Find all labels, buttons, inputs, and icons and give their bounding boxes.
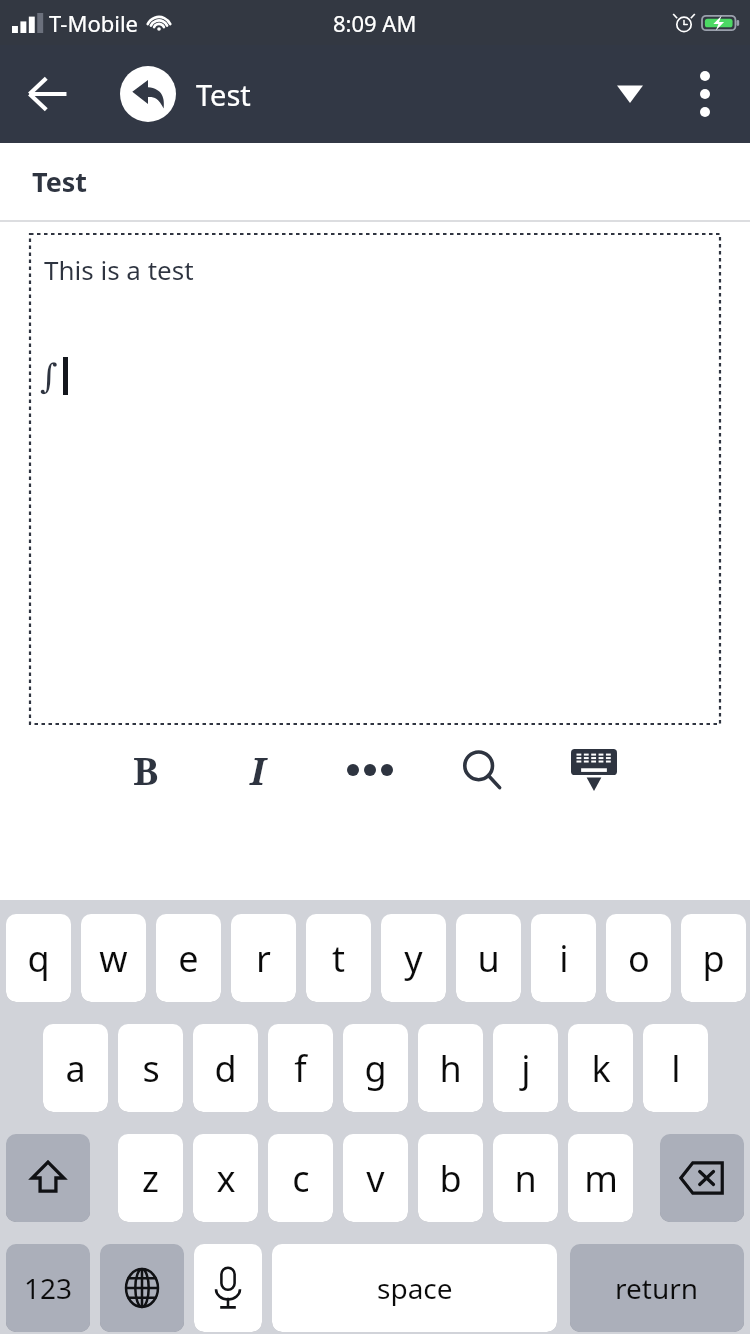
- staticText: a: [65, 1044, 86, 1093]
- staticText: g: [364, 1044, 387, 1093]
- staticText: k: [591, 1044, 611, 1093]
- staticText: w: [99, 934, 128, 983]
- button[interactable]: Italic: [222, 734, 294, 806]
- staticText: l: [671, 1044, 681, 1093]
- button[interactable]: Back: [14, 60, 82, 128]
- button[interactable]: f: [268, 1024, 333, 1112]
- button[interactable]: b: [418, 1134, 483, 1222]
- button[interactable]: p: [681, 914, 746, 1002]
- staticText: 123: [24, 1269, 73, 1307]
- button[interactable]: l: [643, 1024, 708, 1112]
- button[interactable]: z: [118, 1134, 183, 1222]
- button[interactable]: o: [606, 914, 671, 1002]
- button[interactable]: Search: [446, 734, 518, 806]
- button[interactable]: w: [81, 914, 146, 1002]
- button[interactable]: r: [231, 914, 296, 1002]
- staticText: j: [521, 1044, 531, 1093]
- staticText: Test: [196, 75, 251, 114]
- staticText: o: [628, 934, 650, 983]
- staticText: B: [133, 744, 159, 796]
- staticText: ∫: [40, 356, 58, 396]
- button[interactable]: Shift: [6, 1134, 90, 1222]
- button[interactable]: a: [43, 1024, 108, 1112]
- staticText: u: [477, 934, 500, 983]
- button[interactable]: More options: [674, 63, 736, 125]
- button[interactable]: This is a test: [30, 234, 720, 724]
- staticText: h: [439, 1044, 462, 1093]
- staticText: y: [404, 934, 423, 983]
- button[interactable]: s: [118, 1024, 183, 1112]
- staticText: 8:09 AM: [333, 8, 417, 38]
- button[interactable]: k: [568, 1024, 633, 1112]
- button[interactable]: Numbers: [6, 1244, 90, 1332]
- staticText: return: [615, 1269, 699, 1307]
- button[interactable]: u: [456, 914, 521, 1002]
- staticText: i: [559, 934, 569, 983]
- button[interactable]: Dropdown: [602, 66, 658, 122]
- staticText: r: [256, 934, 271, 983]
- button[interactable]: h: [418, 1024, 483, 1112]
- staticText: m: [584, 1154, 618, 1203]
- button[interactable]: t: [306, 914, 371, 1002]
- staticText: q: [27, 934, 50, 983]
- button[interactable]: m: [568, 1134, 633, 1222]
- button[interactable]: More formatting: [334, 734, 406, 806]
- button[interactable]: x: [193, 1134, 258, 1222]
- button[interactable]: c: [268, 1134, 333, 1222]
- button[interactable]: d: [193, 1024, 258, 1112]
- button[interactable]: Switch language: [100, 1244, 184, 1332]
- button[interactable]: n: [493, 1134, 558, 1222]
- button[interactable]: Reply: [118, 64, 178, 124]
- button[interactable]: Backspace: [660, 1134, 744, 1222]
- staticText: T-Mobile: [49, 8, 138, 38]
- staticText: p: [702, 934, 725, 983]
- staticText: x: [216, 1154, 236, 1203]
- button[interactable]: i: [531, 914, 596, 1002]
- staticText: This is a test: [44, 252, 194, 287]
- button[interactable]: Hide keyboard: [558, 734, 630, 806]
- staticText: v: [366, 1154, 385, 1203]
- button[interactable]: space: [272, 1244, 557, 1332]
- button[interactable]: e: [156, 914, 221, 1002]
- staticText: s: [142, 1044, 160, 1093]
- button[interactable]: v: [343, 1134, 408, 1222]
- staticText: I: [250, 744, 266, 796]
- staticText: space: [377, 1269, 453, 1307]
- button[interactable]: Bold: [110, 734, 182, 806]
- button[interactable]: Voice input: [194, 1244, 262, 1332]
- staticText: t: [332, 934, 345, 983]
- staticText: z: [142, 1154, 159, 1203]
- staticText: e: [178, 934, 199, 983]
- staticText: c: [292, 1154, 310, 1203]
- button[interactable]: g: [343, 1024, 408, 1112]
- staticText: n: [514, 1154, 537, 1203]
- staticText: Test: [32, 163, 88, 200]
- button[interactable]: y: [381, 914, 446, 1002]
- staticText: b: [439, 1154, 462, 1203]
- button[interactable]: j: [493, 1024, 558, 1112]
- button[interactable]: Return: [570, 1244, 744, 1332]
- staticText: f: [294, 1044, 307, 1093]
- staticText: d: [214, 1044, 237, 1093]
- button[interactable]: q: [6, 914, 71, 1002]
